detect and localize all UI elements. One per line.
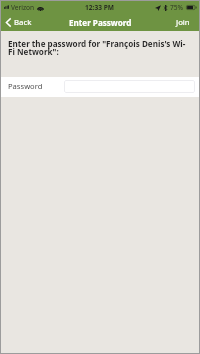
button[interactable]: Back — [1, 15, 38, 30]
staticText: Verizon — [11, 3, 35, 12]
other: Back — [6, 18, 11, 27]
staticText: Back — [14, 17, 32, 28]
staticText: 12:33 PM — [85, 3, 114, 12]
button[interactable]: Password — [1, 77, 199, 97]
staticText: Join — [176, 17, 190, 28]
staticText: Password — [8, 81, 43, 91]
staticText: Enter the password for "François Denis's… — [8, 38, 186, 57]
staticText: Enter Password — [69, 17, 132, 28]
button[interactable]: Join — [170, 15, 199, 30]
staticText: 75% — [170, 3, 184, 12]
